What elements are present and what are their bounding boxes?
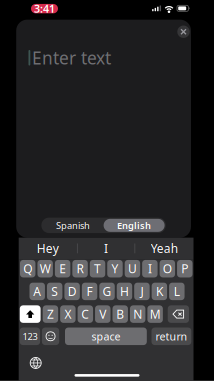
staticText: Yeah [151, 240, 178, 256]
button[interactable]: B [112, 305, 128, 323]
staticText: Q [23, 261, 32, 277]
staticText: return [155, 329, 187, 343]
staticText: space [91, 329, 120, 343]
staticText: E [59, 261, 66, 277]
staticText: J [140, 283, 143, 299]
button[interactable]: C [78, 305, 93, 323]
button[interactable]: Z [43, 305, 58, 323]
button[interactable]: P [177, 260, 192, 277]
button[interactable]: Shift [20, 305, 41, 323]
staticText: 3:41 [34, 2, 55, 16]
staticText: T [94, 261, 101, 277]
staticText: M [150, 306, 161, 322]
staticText: Enter text [32, 46, 111, 69]
staticText: F [87, 283, 93, 299]
button[interactable]: D [64, 283, 80, 300]
button[interactable]: Yeah [135, 238, 193, 259]
button[interactable]: Delete [168, 305, 189, 323]
staticText: W [40, 261, 51, 277]
button[interactable]: space [65, 327, 147, 345]
staticText: B [116, 306, 124, 322]
staticText: 123 [22, 330, 37, 342]
button[interactable]: Q [20, 260, 35, 277]
staticText: Y [111, 261, 118, 277]
staticText: R [77, 261, 84, 277]
button[interactable]: M [147, 305, 163, 323]
staticText: V [99, 306, 106, 322]
button[interactable]: Spanish [43, 219, 104, 232]
button[interactable]: X [60, 305, 76, 323]
button[interactable]: Close [176, 24, 191, 39]
button[interactable]: Hey [19, 238, 77, 259]
button[interactable]: Emoji [42, 327, 59, 345]
button[interactable]: L [169, 283, 184, 300]
button[interactable]: R [72, 260, 88, 277]
button[interactable]: F [82, 283, 97, 300]
staticText: English [117, 219, 151, 232]
staticText: U [128, 261, 137, 277]
button[interactable]: English [104, 219, 165, 232]
staticText: X [64, 306, 71, 322]
staticText: Z [47, 306, 54, 322]
staticText: D [68, 283, 77, 299]
button[interactable]: T [90, 260, 105, 277]
button[interactable]: V [95, 305, 110, 323]
button[interactable]: I [142, 260, 158, 277]
staticText: I [148, 261, 152, 277]
button[interactable]: O [160, 260, 175, 277]
button[interactable]: J [134, 283, 150, 300]
staticText: Hey [37, 240, 59, 256]
button[interactable]: G [99, 283, 115, 300]
staticText: H [120, 283, 129, 299]
button[interactable]: return [151, 327, 191, 345]
staticText: A [33, 283, 41, 299]
staticText: P [181, 261, 188, 277]
button[interactable]: N [130, 305, 145, 323]
button[interactable]: K [152, 283, 167, 300]
button[interactable]: I [77, 238, 135, 259]
button[interactable]: U [125, 260, 140, 277]
staticText: I [104, 240, 108, 256]
staticText: K [156, 283, 163, 299]
button[interactable]: W [37, 260, 53, 277]
button[interactable]: Next keyboard [25, 354, 47, 372]
staticText: S [51, 283, 58, 299]
staticText: L [174, 283, 180, 299]
button[interactable]: Y [107, 260, 123, 277]
staticText: G [102, 283, 111, 299]
staticText: N [133, 306, 142, 322]
button[interactable]: E [55, 260, 70, 277]
button[interactable]: S [47, 283, 62, 300]
staticText: Spanish [56, 219, 90, 232]
staticText: C [81, 306, 89, 322]
button[interactable]: 123 [20, 327, 40, 345]
button[interactable]: A [29, 283, 45, 300]
staticText: O [163, 261, 172, 277]
button[interactable]: H [117, 283, 132, 300]
